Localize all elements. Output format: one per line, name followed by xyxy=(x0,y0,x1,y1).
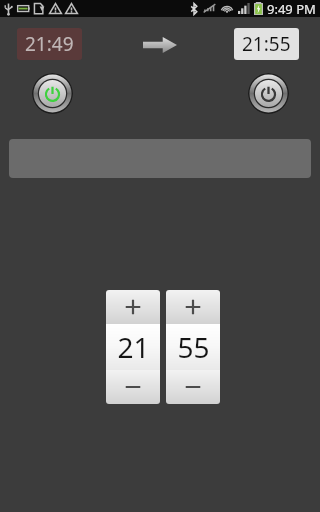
button[interactable]: Decrement xyxy=(166,370,220,404)
button[interactable]: 21:49 xyxy=(17,28,82,60)
button[interactable]: 55 xyxy=(166,324,220,370)
staticText: 9:49 PM xyxy=(267,0,316,17)
button[interactable]: Increment xyxy=(166,290,220,324)
staticText: 21:49 xyxy=(25,31,74,57)
staticText: 21:55 xyxy=(242,31,291,57)
button[interactable]: Increment xyxy=(106,290,160,324)
button[interactable]: Enable alarm xyxy=(32,73,73,114)
button[interactable]: 21 xyxy=(106,324,160,370)
staticText: 55 xyxy=(177,328,210,366)
other: Arrow xyxy=(143,37,177,53)
button[interactable]: Decrement xyxy=(106,370,160,404)
button[interactable]: Disable alarm xyxy=(248,73,289,114)
button[interactable]: 21:55 xyxy=(234,28,299,60)
staticText: 21 xyxy=(117,328,150,366)
